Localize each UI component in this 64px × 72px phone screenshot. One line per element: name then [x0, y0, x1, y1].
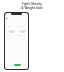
staticText: & Weight Gain [21, 6, 43, 10]
button[interactable]: Continue [14, 64, 21, 66]
button[interactable]: Meal card two [20, 30, 26, 33]
staticText: Fight Obesity [22, 2, 42, 6]
button[interactable]: Meal card one [9, 30, 15, 33]
